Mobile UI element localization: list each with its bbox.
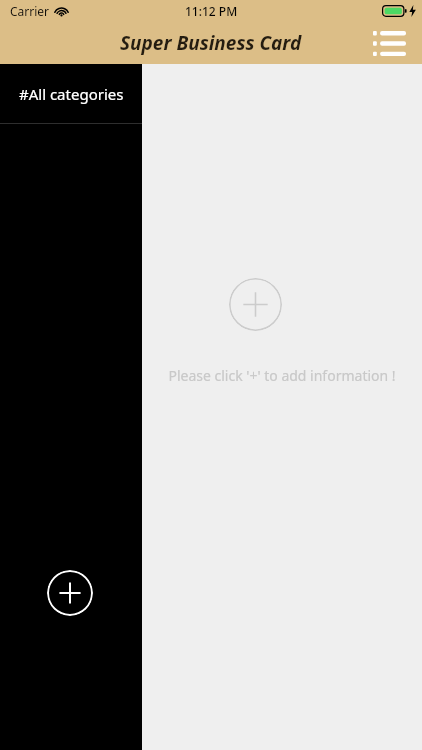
button[interactable]: #All categories <box>0 64 142 123</box>
staticText: #All categories <box>19 84 124 104</box>
staticText: Super Business Card <box>120 30 302 56</box>
button[interactable]: Add category <box>47 570 93 616</box>
staticText: Carrier <box>10 3 50 19</box>
button[interactable]: Add information <box>229 278 282 331</box>
button[interactable]: Menu <box>368 22 410 64</box>
staticText: 11:12 PM <box>185 3 238 19</box>
staticText: Please click '+' to add information ! <box>142 366 422 385</box>
